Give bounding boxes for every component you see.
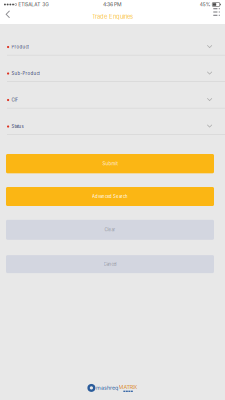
staticText: 3G — [42, 2, 49, 7]
button[interactable]: Status — [0, 108, 225, 135]
button[interactable]: CIF — [0, 82, 225, 108]
button[interactable]: Submit — [6, 154, 219, 173]
button[interactable]: Product — [0, 29, 225, 55]
staticText: Trade Enquiries — [92, 13, 133, 20]
button[interactable]: Clear — [6, 220, 219, 240]
staticText: Sub-Product — [11, 71, 39, 76]
staticText: Clear — [104, 227, 115, 232]
button[interactable]: Sub-Product — [0, 55, 225, 82]
staticText: Product — [11, 44, 28, 50]
staticText: mashreq — [96, 385, 118, 391]
button[interactable]: Cancel — [6, 255, 219, 273]
staticText: 4:36 PM — [103, 1, 122, 7]
staticText: CIF — [11, 97, 18, 103]
staticText: Submit — [102, 161, 117, 166]
button[interactable]: Menu — [208, 4, 225, 28]
button[interactable]: Advanced Search — [6, 187, 219, 206]
staticText: ETISALAT — [18, 2, 40, 7]
staticText: Status — [11, 124, 23, 129]
staticText: Advanced Search — [92, 194, 128, 199]
button[interactable]: Back — [0, 7, 16, 26]
staticText: MATRIX — [119, 384, 138, 390]
staticText: 45% — [200, 2, 211, 7]
staticText: Cancel — [103, 261, 116, 267]
